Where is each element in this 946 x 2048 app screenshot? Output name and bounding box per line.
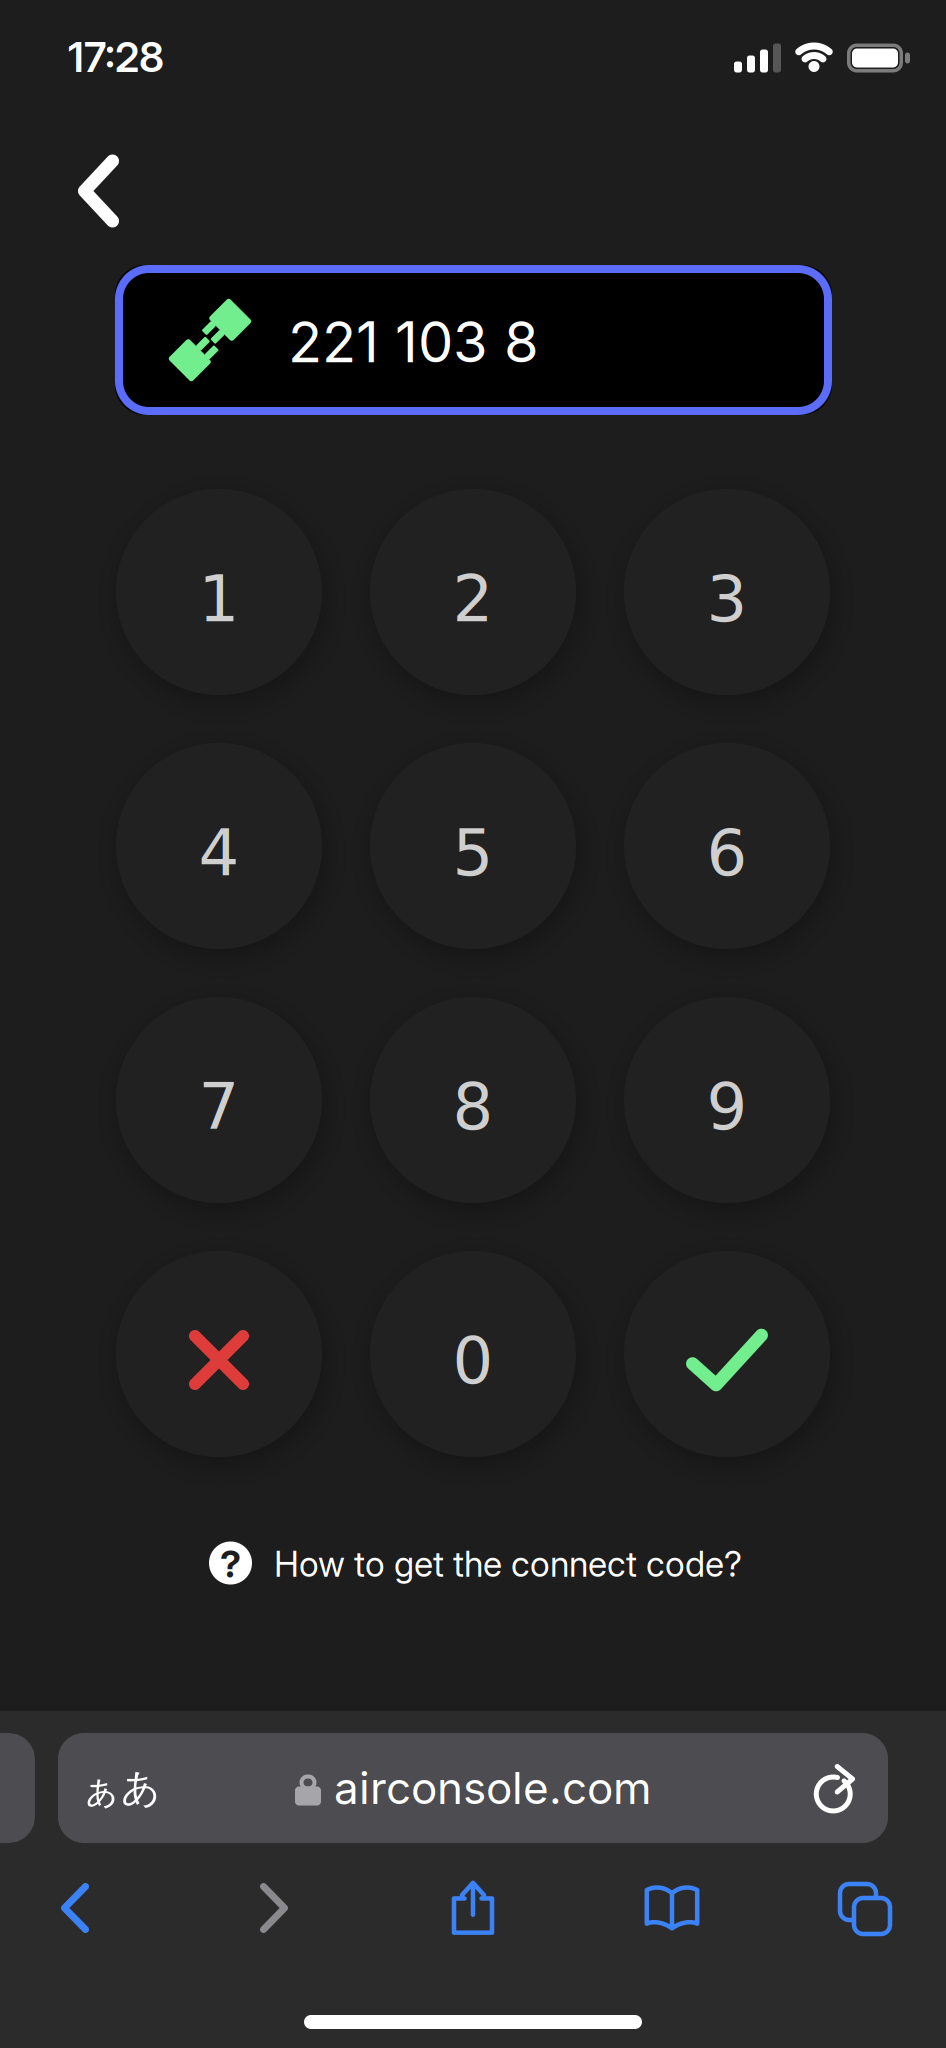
button[interactable]: Tabs xyxy=(810,1862,932,1954)
button[interactable]: Share xyxy=(412,1862,534,1954)
staticText: ぁあ xyxy=(81,1764,161,1812)
button[interactable]: 9 xyxy=(624,997,830,1203)
button[interactable]: ぁあ xyxy=(58,1733,888,1843)
button[interactable]: 2 xyxy=(370,489,576,695)
staticText: 17:28 xyxy=(68,33,164,81)
staticText: 3 xyxy=(706,562,747,636)
staticText: ? xyxy=(220,1542,241,1586)
staticText: 9 xyxy=(706,1070,747,1144)
button[interactable]: 1 xyxy=(116,489,322,695)
button[interactable]: 8 xyxy=(370,997,576,1203)
staticText: 0 xyxy=(452,1324,493,1398)
staticText: 4 xyxy=(198,816,239,890)
staticText: 8 xyxy=(452,1070,493,1144)
staticText: 6 xyxy=(706,816,747,890)
staticText: 221 103 8 xyxy=(288,309,539,375)
staticText: 1 xyxy=(198,562,239,636)
button[interactable]: 0 xyxy=(370,1251,576,1457)
button[interactable]: 7 xyxy=(116,997,322,1203)
button[interactable]: ? xyxy=(191,1525,760,1601)
button[interactable]: 4 xyxy=(116,743,322,949)
button[interactable]: Back xyxy=(14,1862,136,1954)
staticText: How to get the connect code? xyxy=(274,1544,742,1584)
button[interactable]: 3 xyxy=(624,489,830,695)
button[interactable] xyxy=(624,1251,830,1457)
button[interactable]: 6 xyxy=(624,743,830,949)
staticText: airconsole.com xyxy=(334,1762,652,1814)
button[interactable]: Back xyxy=(51,139,146,243)
staticText: 2 xyxy=(452,562,493,636)
staticText: 5 xyxy=(452,816,493,890)
button[interactable]: 5 xyxy=(370,743,576,949)
button[interactable]: Forward xyxy=(213,1862,335,1954)
button[interactable]: Bookmarks xyxy=(611,1862,733,1954)
button[interactable] xyxy=(116,1251,322,1457)
staticText: 7 xyxy=(198,1070,239,1144)
